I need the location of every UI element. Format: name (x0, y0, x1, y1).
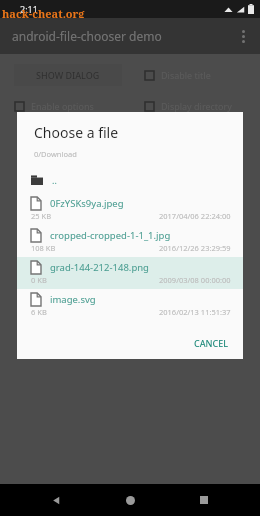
button[interactable]: Home (112, 484, 148, 516)
staticText: 25 KB (31, 211, 52, 221)
button[interactable]: Display directory (144, 100, 232, 112)
staticText: android-file-chooser demo (12, 28, 162, 44)
staticText: 2009/03/08 00:00:00 (159, 275, 231, 285)
staticText: grad-144-212-148.png (50, 261, 149, 274)
staticText: Enable options (31, 100, 94, 112)
staticText: 108 KB (31, 243, 56, 253)
staticText: 6 KB (31, 307, 47, 317)
staticText: cropped-cropped-1-1_1.jpg (50, 229, 171, 242)
button[interactable]: 0FzYSKs9ya.jpeg (17, 193, 243, 225)
button[interactable]: grad-144-212-148.png (17, 257, 243, 289)
staticText: Display directory (161, 100, 232, 112)
button[interactable]: cropped-cropped-1-1_1.jpg (17, 225, 243, 257)
button[interactable]: SHOW DIALOG (14, 64, 122, 86)
staticText: Disable title (161, 69, 211, 81)
button[interactable]: More options (236, 27, 250, 45)
staticText: 0FzYSKs9ya.jpeg (50, 197, 124, 210)
button[interactable]: .. (17, 167, 243, 193)
staticText: Choose a file (34, 123, 119, 142)
button[interactable]: image.svg (17, 289, 243, 321)
staticText: .. (52, 174, 57, 186)
staticText: 2016/02/13 11:51:37 (159, 307, 231, 317)
staticText: 2016/12/26 23:29:59 (159, 243, 231, 253)
staticText: SHOW DIALOG (36, 69, 100, 81)
button[interactable]: CANCEL (180, 333, 243, 353)
button[interactable]: Enable options (14, 100, 94, 112)
button[interactable]: Disable title (144, 69, 211, 81)
staticText: 2:11 (20, 3, 38, 15)
staticText: image.svg (50, 293, 96, 306)
staticText: 0 KB (31, 275, 47, 285)
button[interactable]: Recents (186, 484, 222, 516)
button[interactable]: Back (38, 484, 74, 516)
staticText: CANCEL (194, 337, 229, 349)
staticText: 0/Download (34, 149, 77, 159)
staticText: 2017/04/06 22:24:00 (159, 211, 231, 221)
staticText: hack-cheat.org (2, 6, 85, 18)
